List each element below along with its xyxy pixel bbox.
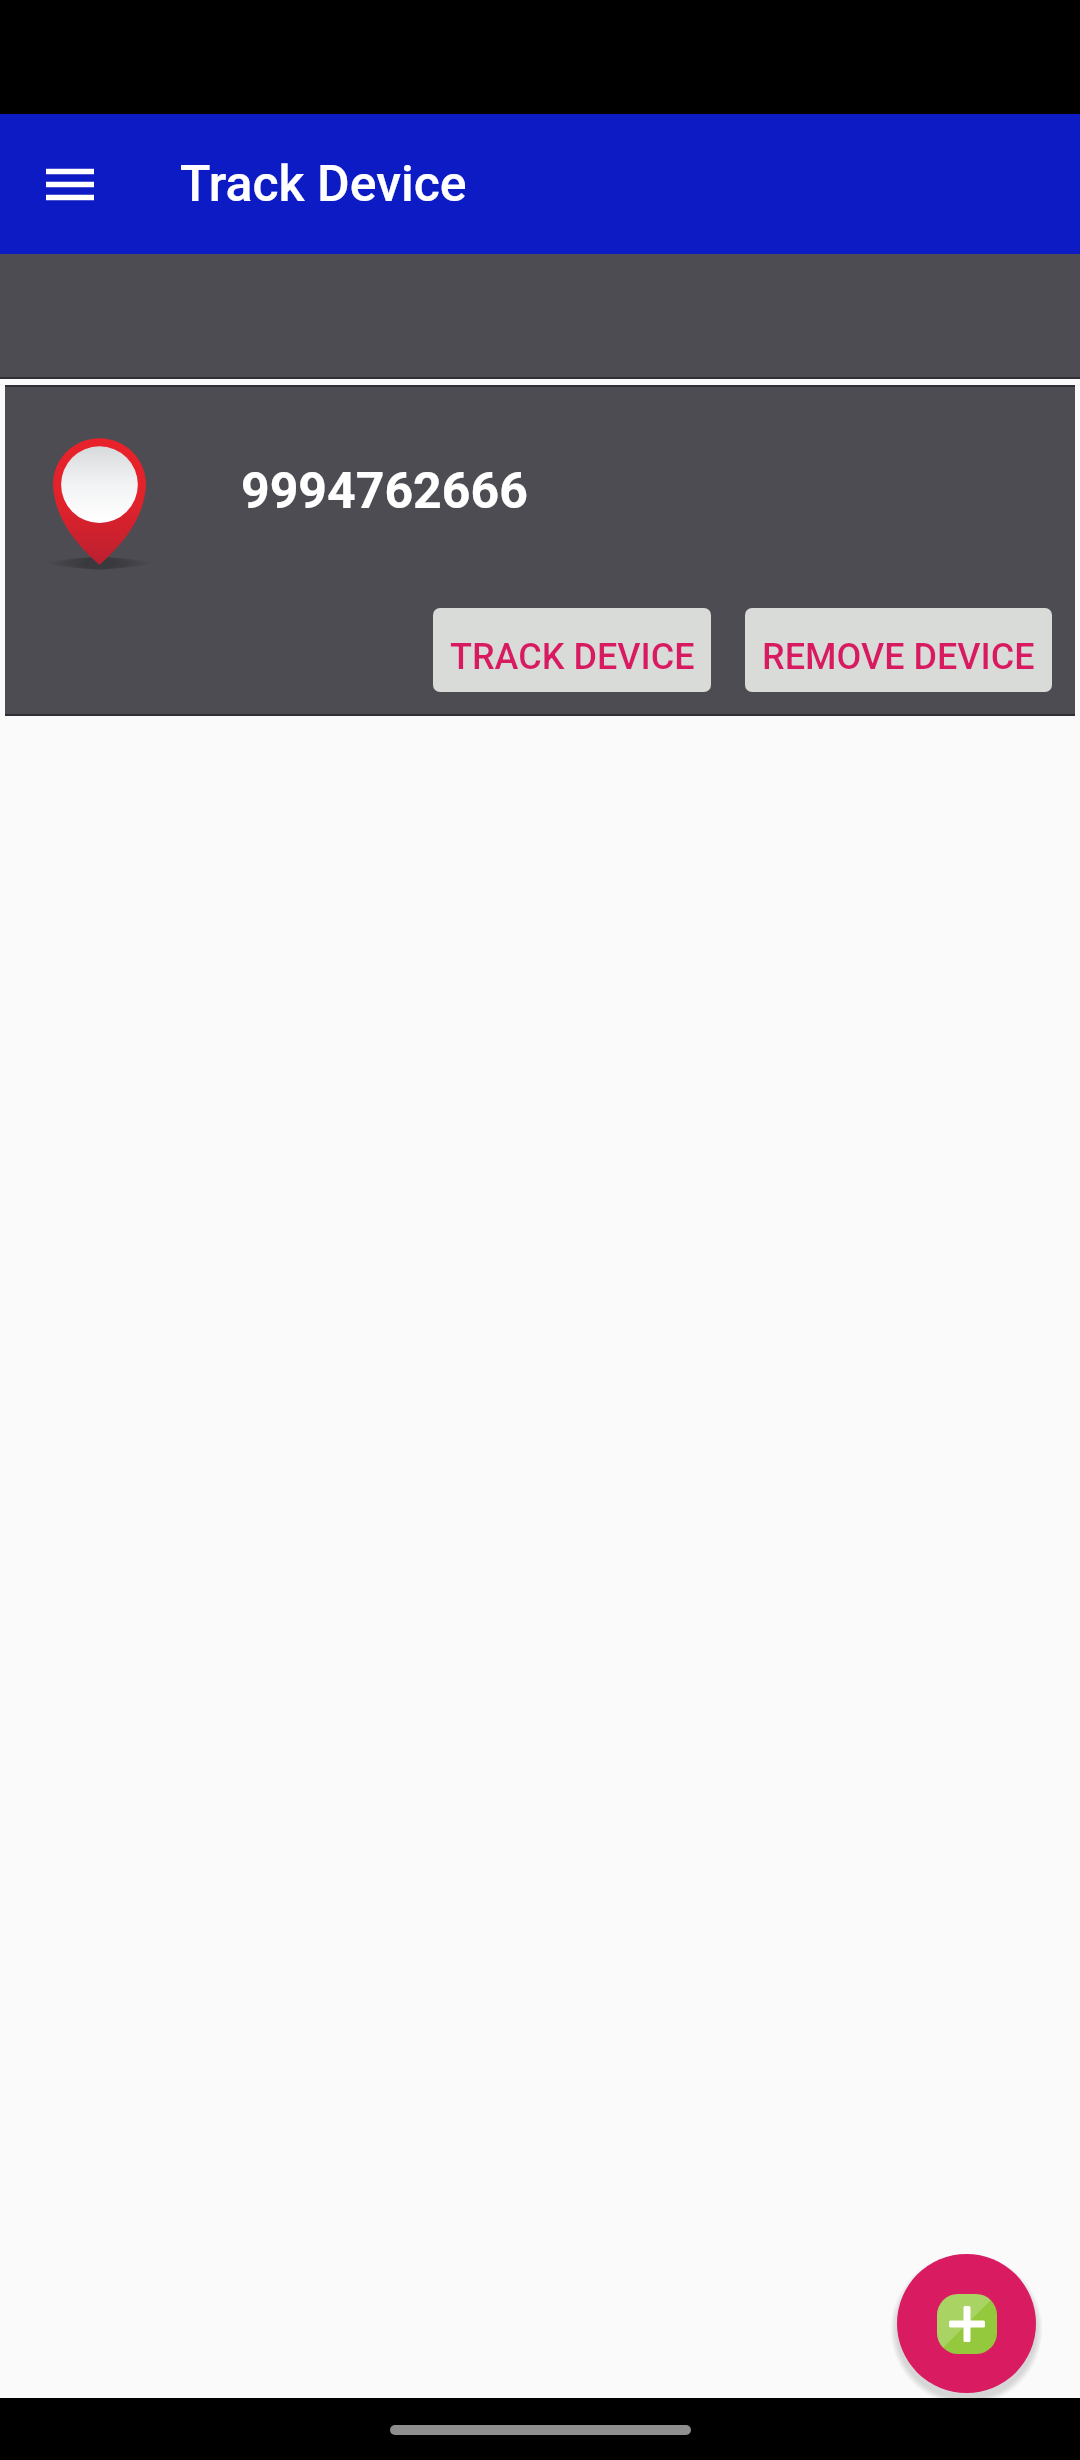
staticText: TRACK DEVICE <box>450 636 695 678</box>
button[interactable]: Device 9994762666 <box>5 385 1075 716</box>
staticText: Track Device <box>180 155 467 214</box>
button[interactable]: Add device <box>897 2254 1036 2393</box>
button[interactable]: Open navigation menu <box>16 130 124 238</box>
staticText: REMOVE DEVICE <box>762 636 1035 678</box>
button[interactable]: TRACK DEVICE <box>433 608 711 692</box>
button[interactable]: REMOVE DEVICE <box>745 608 1052 692</box>
staticText: 9994762666 <box>241 462 528 521</box>
